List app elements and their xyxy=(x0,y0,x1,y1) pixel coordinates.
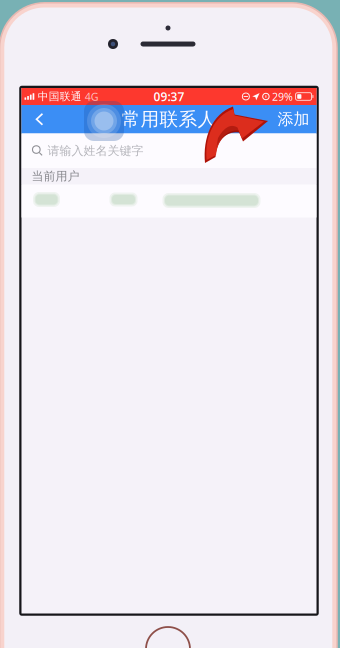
button[interactable] xyxy=(21,184,316,217)
staticText: 请输入姓名关键字 xyxy=(47,143,143,158)
staticText: 常用联系人 xyxy=(121,108,216,131)
staticText: 09:37 xyxy=(153,88,184,104)
staticText: 添加 xyxy=(277,109,309,129)
staticText: 当前用户 xyxy=(31,169,79,184)
button[interactable]: Back xyxy=(21,105,57,133)
staticText: 4G xyxy=(82,89,99,104)
button[interactable]: 添加 xyxy=(270,105,316,133)
staticText: 中国联通 xyxy=(38,90,82,103)
staticText: 29% xyxy=(272,89,293,104)
